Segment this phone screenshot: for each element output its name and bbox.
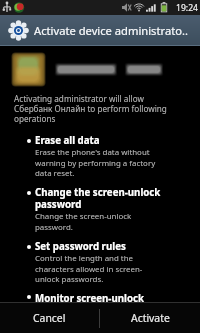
staticText: Change the screen-unlock password. <box>35 211 132 232</box>
button[interactable]: Change the screen-unlock password <box>0 186 200 232</box>
staticText: Activate device administrato.. <box>34 23 188 38</box>
staticText: Erase all data <box>35 134 100 147</box>
other: Settings <box>9 21 28 40</box>
staticText: Cancel <box>33 311 66 325</box>
staticText: Monitor screen-unlock <box>35 292 144 302</box>
button[interactable]: Cancel <box>0 303 99 333</box>
staticText: Set password rules <box>35 240 126 253</box>
staticText: Control the length and the characters al… <box>35 253 143 284</box>
staticText: Activating administrator will allow Сбер… <box>14 93 167 125</box>
button[interactable]: Monitor screen-unlock <box>0 292 200 302</box>
button[interactable]: Activate <box>100 303 200 333</box>
button[interactable]: Set password rules <box>0 240 200 284</box>
staticText: Activate <box>131 311 170 325</box>
staticText: Erase the phone's data without warning b… <box>35 147 156 178</box>
button[interactable]: Erase all data <box>0 134 200 178</box>
staticText: 19:24 <box>176 2 198 14</box>
staticText: Change the screen-unlock password <box>35 186 161 211</box>
